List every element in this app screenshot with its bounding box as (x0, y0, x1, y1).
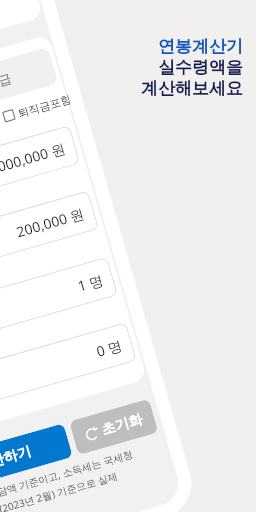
staticText: 초기화 (99, 411, 145, 439)
staticText: 실수령액을 (158, 57, 243, 78)
staticText: 국민연금 부담액 기준이고, 소득세는 국세청 간이세액표(2023년 2월) … (0, 446, 140, 512)
button[interactable]: 50,000,000 원 (0, 128, 71, 222)
button[interactable]: 연봉 (0, 47, 58, 145)
button[interactable]: 초기화 (69, 399, 158, 455)
staticText: 50,000,000 원 (0, 138, 68, 181)
button[interactable]: 계산하기 (0, 423, 73, 494)
button[interactable]: 퇴직금포함 (2, 91, 71, 124)
button[interactable]: 200,000 원 (0, 193, 89, 287)
staticText: 계산해보세요 (141, 78, 243, 99)
staticText: 계산하기 (0, 443, 33, 475)
staticText: 0 명 (94, 335, 124, 361)
button[interactable]: 월급 (0, 51, 55, 111)
staticText: 연봉계산기 (158, 36, 243, 57)
staticText: 월급 (0, 70, 13, 92)
button[interactable]: 1 명 (0, 259, 108, 354)
staticText: 퇴직금포함 (16, 92, 71, 120)
staticText: 200,000 원 (14, 204, 87, 241)
staticText: 1 명 (75, 270, 106, 295)
button[interactable]: 0 명 (0, 325, 127, 419)
